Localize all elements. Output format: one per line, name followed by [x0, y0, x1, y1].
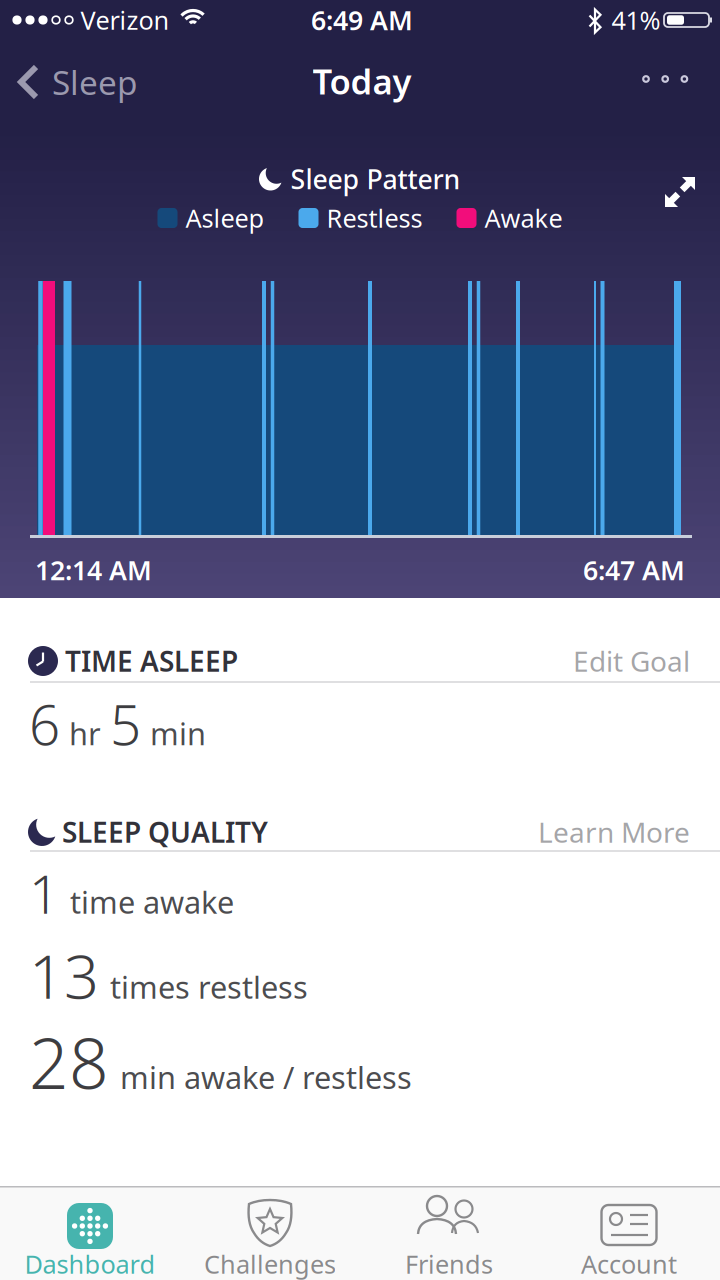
staticText: time awake — [70, 881, 234, 922]
staticText: 6 — [29, 688, 60, 760]
staticText: times restless — [110, 966, 308, 1007]
button[interactable]: Learn More — [538, 813, 690, 851]
staticText: Verizon — [80, 3, 169, 37]
button[interactable]: More — [642, 74, 688, 84]
staticText: Friends — [405, 1247, 493, 1280]
button[interactable]: Friends — [360, 1186, 540, 1280]
staticText: Account — [581, 1247, 677, 1280]
staticText: 41% — [611, 3, 660, 37]
staticText: 1 — [29, 858, 59, 928]
staticText: hr — [69, 713, 101, 754]
staticText: Challenges — [204, 1247, 336, 1280]
button[interactable]: Challenges — [180, 1186, 360, 1280]
staticText: TIME ASLEEP — [65, 642, 238, 680]
staticText: Sleep Pattern — [290, 161, 460, 197]
staticText: min awake / restless — [120, 1057, 412, 1097]
staticText: min — [150, 713, 206, 754]
button[interactable]: Expand — [664, 176, 696, 210]
button[interactable]: Dashboard — [0, 1186, 180, 1280]
staticText: Today — [312, 58, 411, 104]
staticText: Dashboard — [24, 1247, 155, 1280]
button[interactable]: Edit Goal — [573, 642, 690, 680]
staticText: Learn More — [538, 813, 690, 851]
staticText: 5 — [110, 688, 141, 760]
staticText: Edit Goal — [573, 642, 690, 680]
staticText: 6:47 AM — [583, 552, 685, 588]
button[interactable]: Sleep — [8, 60, 144, 104]
staticText: SLEEP QUALITY — [62, 813, 268, 851]
staticText: Awake — [484, 201, 562, 235]
staticText: Asleep — [185, 201, 264, 235]
staticText: Sleep — [52, 60, 138, 104]
staticText: Restless — [326, 201, 422, 235]
staticText: 12:14 AM — [35, 552, 152, 588]
staticText: 13 — [29, 934, 99, 1016]
staticText: 28 — [29, 1016, 109, 1108]
staticText: 6:49 AM — [311, 2, 413, 38]
button[interactable]: Account — [540, 1186, 720, 1280]
